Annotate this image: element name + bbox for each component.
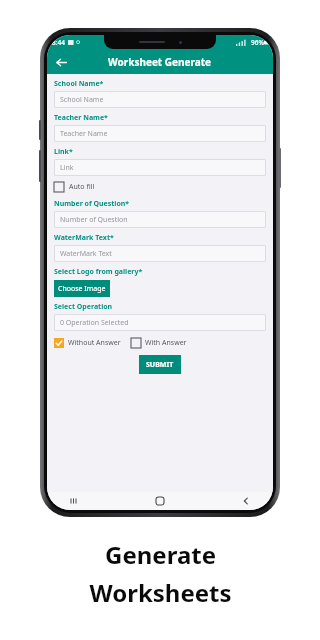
button[interactable]: Number of Question xyxy=(54,211,266,228)
button[interactable]: SUBMIT xyxy=(139,355,181,374)
staticText: Select Operation xyxy=(54,302,113,312)
button[interactable]: Recent apps xyxy=(65,492,83,510)
staticText: Number of Question* xyxy=(54,199,130,209)
staticText: School Name xyxy=(60,95,104,105)
button[interactable]: Without Answer xyxy=(54,338,121,348)
staticText: Number of Question xyxy=(60,215,128,225)
staticText: Choose Image xyxy=(58,284,106,294)
button[interactable]: Choose Image xyxy=(54,280,110,297)
staticText: Select Logo from gallery* xyxy=(54,267,143,277)
staticText: Link xyxy=(60,163,74,173)
staticText: Worksheets xyxy=(89,576,232,609)
button[interactable]: 0 Operation Selected xyxy=(54,314,266,331)
staticText: Teacher Name* xyxy=(54,113,108,123)
button[interactable]: Teacher Name xyxy=(54,125,266,142)
button[interactable]: Back xyxy=(237,492,255,510)
button[interactable]: Back xyxy=(53,54,69,70)
staticText: Without Answer xyxy=(68,338,121,348)
staticText: 96% xyxy=(251,38,264,47)
staticText: Auto fill xyxy=(69,182,95,192)
button[interactable]: WaterMark Text xyxy=(54,245,266,262)
button[interactable]: With Answer xyxy=(131,338,187,348)
staticText: WaterMark Text* xyxy=(54,233,114,243)
staticText: Teacher Name xyxy=(60,129,108,139)
staticText: Link* xyxy=(54,147,73,157)
staticText: SUBMIT xyxy=(146,360,174,370)
button[interactable]: Link xyxy=(54,159,266,176)
button[interactable]: Auto fill xyxy=(54,182,95,192)
staticText: 8:44 xyxy=(52,38,65,47)
staticText: School Name* xyxy=(54,79,104,89)
staticText: Generate xyxy=(105,538,216,571)
staticText: With Answer xyxy=(145,338,187,348)
button[interactable]: School Name xyxy=(54,91,266,108)
staticText: WaterMark Text xyxy=(60,249,112,259)
staticText: Worksheet Generate xyxy=(108,55,212,69)
staticText: 0 Operation Selected xyxy=(60,318,129,328)
button[interactable]: Home xyxy=(151,492,169,510)
